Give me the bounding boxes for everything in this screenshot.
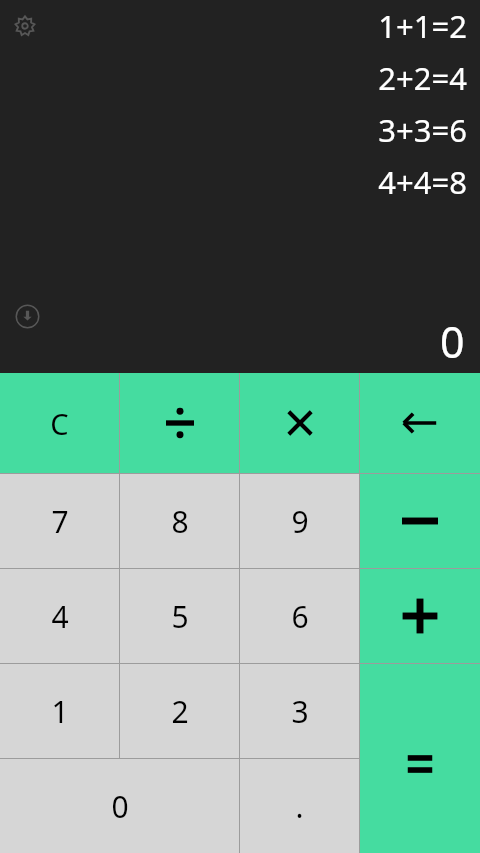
staticText: 7 xyxy=(51,501,69,542)
button[interactable]: Equals xyxy=(360,664,480,853)
button[interactable]: Plus xyxy=(360,569,480,663)
button[interactable]: 6 xyxy=(240,569,359,663)
button[interactable]: 5 xyxy=(120,569,239,663)
staticText: 3 xyxy=(291,691,309,732)
button[interactable]: 8 xyxy=(120,474,239,568)
button[interactable]: C xyxy=(0,373,119,473)
button[interactable]: 2 xyxy=(120,664,239,758)
button[interactable]: Multiply xyxy=(240,373,359,473)
staticText: 4+4=8 xyxy=(378,161,467,203)
button[interactable]: 0 xyxy=(0,759,239,853)
button[interactable]: Minus xyxy=(360,474,480,568)
button[interactable]: 9 xyxy=(240,474,359,568)
staticText: 8 xyxy=(171,501,189,542)
staticText: 1 xyxy=(51,691,69,732)
staticText: 2 xyxy=(171,691,189,732)
button[interactable]: Settings xyxy=(13,14,37,38)
staticText: 1+1=2 xyxy=(378,5,467,47)
staticText: 5 xyxy=(171,596,189,637)
staticText: . xyxy=(295,786,304,827)
button[interactable]: 3 xyxy=(240,664,359,758)
button[interactable]: Scroll to latest xyxy=(15,304,40,329)
staticText: 0 xyxy=(111,786,129,827)
staticText: 2+2=4 xyxy=(378,57,467,99)
button[interactable]: 7 xyxy=(0,474,119,568)
staticText: C xyxy=(50,404,69,443)
staticText: 3+3=6 xyxy=(378,109,467,151)
staticText: 9 xyxy=(291,501,309,542)
staticText: 4 xyxy=(51,596,69,637)
staticText: 0 xyxy=(440,312,465,371)
button[interactable]: Divide xyxy=(120,373,239,473)
button[interactable]: Backspace xyxy=(360,373,480,473)
staticText: 6 xyxy=(291,596,309,637)
button[interactable]: 4 xyxy=(0,569,119,663)
button[interactable]: . xyxy=(240,759,359,853)
button[interactable]: 1 xyxy=(0,664,119,758)
